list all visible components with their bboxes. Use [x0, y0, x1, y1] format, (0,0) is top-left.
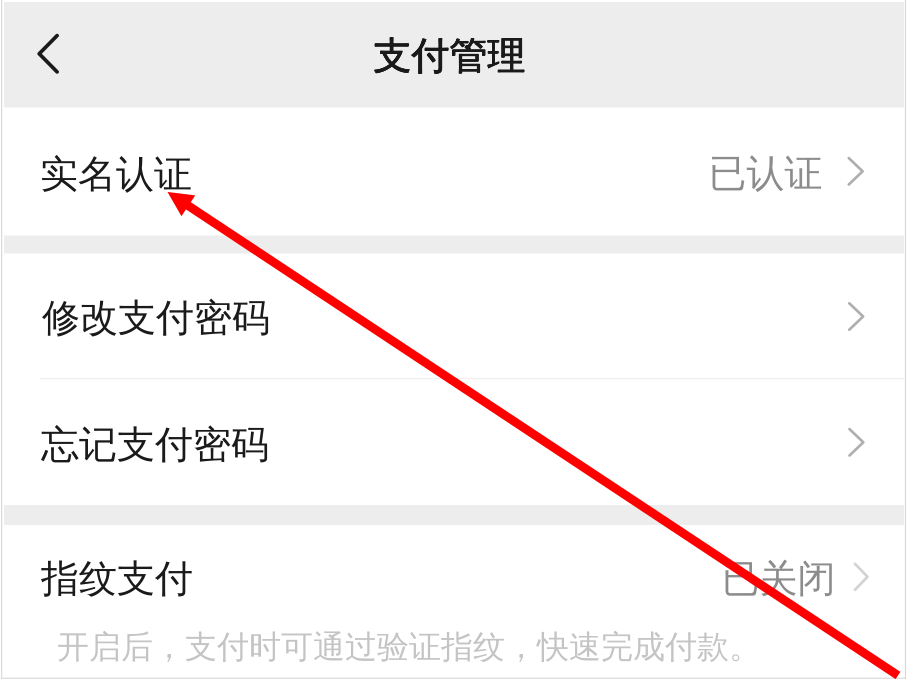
staticText: 支付管理 [373, 32, 525, 80]
staticText: 已认证 [709, 150, 823, 198]
staticText: 实名认证 [40, 150, 192, 198]
staticText: 已关闭 [721, 555, 835, 603]
button[interactable]: 修改支付密码 [4, 254, 904, 379]
staticText: 开启后，支付时可通过验证指纹，快速完成付款。 [57, 627, 761, 667]
button[interactable]: 忘记支付密码 [4, 379, 904, 505]
staticText: 修改支付密码 [42, 294, 270, 342]
staticText: 指纹支付 [41, 555, 193, 603]
button[interactable]: 实名认证 [4, 108, 904, 235]
button[interactable]: 返回 [21, 18, 75, 90]
staticText: 忘记支付密码 [41, 421, 269, 469]
button[interactable]: 指纹支付 [4, 525, 904, 630]
